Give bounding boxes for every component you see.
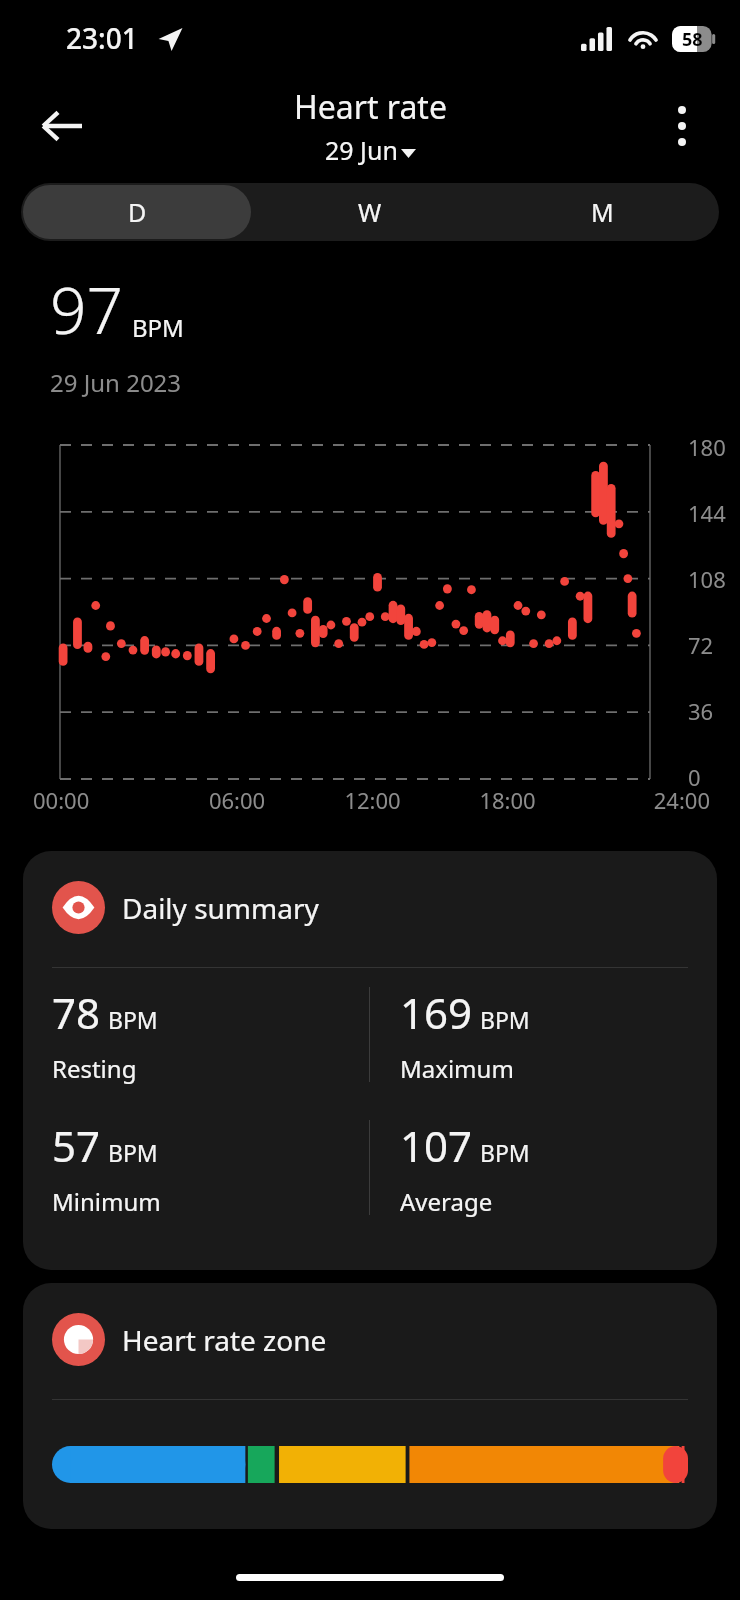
- staticText: 00:00: [33, 785, 169, 815]
- button[interactable]: W: [255, 185, 484, 239]
- staticText: BPM: [480, 1004, 530, 1035]
- staticText: 169: [400, 984, 473, 1041]
- staticText: 97: [50, 266, 124, 353]
- staticText: 29 Jun 2023: [50, 366, 182, 399]
- staticText: BPM: [108, 1137, 158, 1168]
- staticText: 78: [52, 984, 101, 1041]
- button[interactable]: M: [488, 185, 717, 239]
- staticText: 24:00: [575, 785, 710, 815]
- button[interactable]: D: [23, 185, 251, 239]
- staticText: 57: [52, 1117, 101, 1174]
- staticText: 36: [688, 696, 714, 726]
- button[interactable]: Daily summary: [23, 851, 717, 1270]
- staticText: Average: [400, 1185, 493, 1218]
- staticText: D: [128, 195, 147, 229]
- staticText: 18:00: [440, 785, 575, 815]
- staticText: 12:00: [305, 785, 440, 815]
- staticText: 144: [688, 498, 726, 528]
- button[interactable]: 29 Jun: [325, 133, 416, 167]
- staticText: 23:01: [66, 19, 138, 57]
- staticText: 180: [688, 432, 726, 462]
- staticText: BPM: [480, 1137, 530, 1168]
- staticText: 0: [688, 762, 701, 792]
- staticText: 58: [682, 27, 703, 52]
- button[interactable]: Heart rate zone: [23, 1283, 717, 1529]
- staticText: Heart rate zone: [122, 1321, 327, 1359]
- staticText: 29 Jun: [325, 133, 398, 167]
- staticText: BPM: [132, 311, 184, 344]
- staticText: Heart rate: [294, 85, 447, 129]
- staticText: Resting: [52, 1052, 137, 1085]
- staticText: Maximum: [400, 1052, 514, 1085]
- button[interactable]: More options: [650, 94, 714, 158]
- staticText: BPM: [108, 1004, 158, 1035]
- staticText: M: [591, 195, 614, 229]
- staticText: 107: [400, 1117, 473, 1174]
- staticText: W: [358, 195, 382, 229]
- staticText: 72: [688, 630, 714, 660]
- staticText: Daily summary: [122, 889, 319, 927]
- staticText: 06:00: [169, 785, 305, 815]
- staticText: 108: [688, 564, 726, 594]
- button[interactable]: Back: [26, 90, 98, 162]
- staticText: Minimum: [52, 1185, 161, 1218]
